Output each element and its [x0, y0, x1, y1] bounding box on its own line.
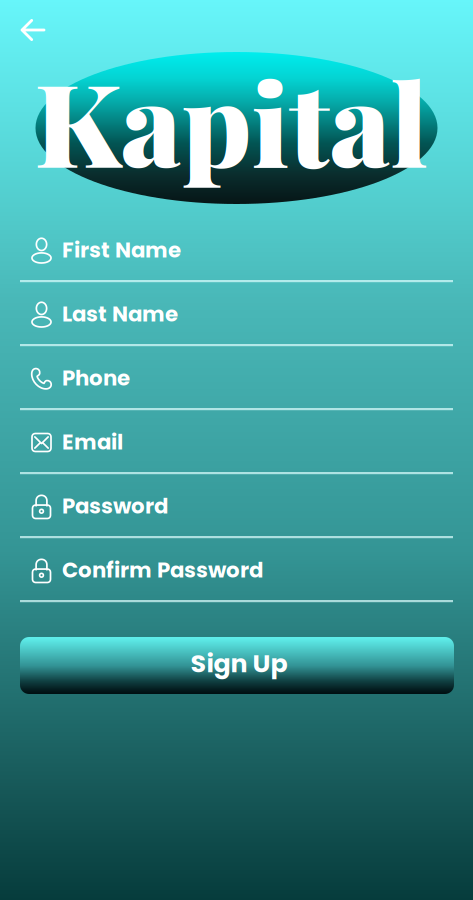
- staticText: Password: [62, 491, 168, 521]
- button[interactable]: Confirm Password: [0, 537, 473, 601]
- staticText: Kapital: [34, 44, 428, 196]
- button[interactable]: Email: [0, 409, 473, 473]
- button[interactable]: Password: [0, 473, 473, 537]
- staticText: Confirm Password: [62, 555, 263, 585]
- button[interactable]: Phone: [0, 345, 473, 409]
- button[interactable]: Sign Up: [0, 637, 473, 694]
- button[interactable]: First Name: [0, 217, 473, 281]
- button[interactable]: Last Name: [0, 281, 473, 345]
- button[interactable]: Back: [11, 8, 55, 52]
- staticText: Email: [62, 427, 123, 457]
- staticText: Last Name: [62, 299, 178, 329]
- staticText: Phone: [62, 363, 130, 393]
- staticText: First Name: [62, 235, 181, 265]
- staticText: Sign Up: [190, 646, 287, 681]
